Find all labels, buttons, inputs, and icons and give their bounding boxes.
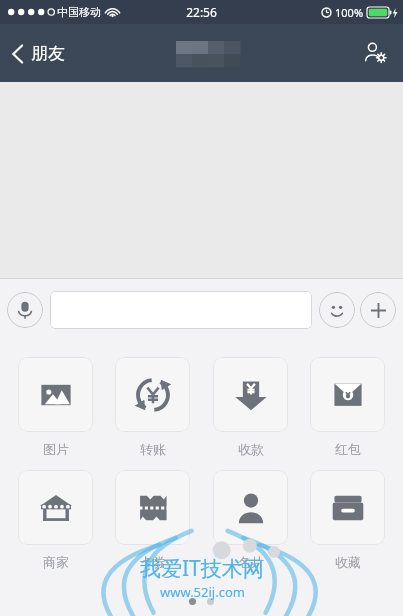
button[interactable]: 朋友 [0,35,79,72]
button[interactable]: 图片 [14,357,97,457]
button[interactable]: 卡券 [111,470,194,570]
button[interactable]: Contact settings [357,35,393,71]
button[interactable]: More [360,292,396,328]
staticText: 收款 [238,441,264,457]
button[interactable]: 红包 [306,357,389,457]
staticText: 卡券 [140,554,166,570]
staticText: 转账 [140,441,166,457]
staticText: 图片 [43,441,69,457]
button[interactable]: 转账 [111,357,194,457]
button[interactable]: Emoji [319,292,355,328]
staticText: 我爱IT技术网 [140,554,264,583]
button[interactable] [50,291,312,329]
staticText: 收藏 [335,554,361,570]
button[interactable]: 收藏 [306,470,389,570]
button[interactable]: 收款 [209,357,292,457]
staticText: 朋友 [31,43,65,64]
staticText: 红包 [335,441,361,457]
button[interactable]: 商家 [14,470,97,570]
staticText: 100% [335,5,364,20]
staticText: 22:56 [186,4,217,20]
staticText: 商家 [43,554,69,570]
staticText: 名片 [238,554,264,570]
button[interactable]: Voice message [7,292,43,328]
staticText: www.52ij.com [160,583,245,601]
staticText: 中国移动 [57,5,101,19]
button[interactable]: 名片 [209,470,292,570]
